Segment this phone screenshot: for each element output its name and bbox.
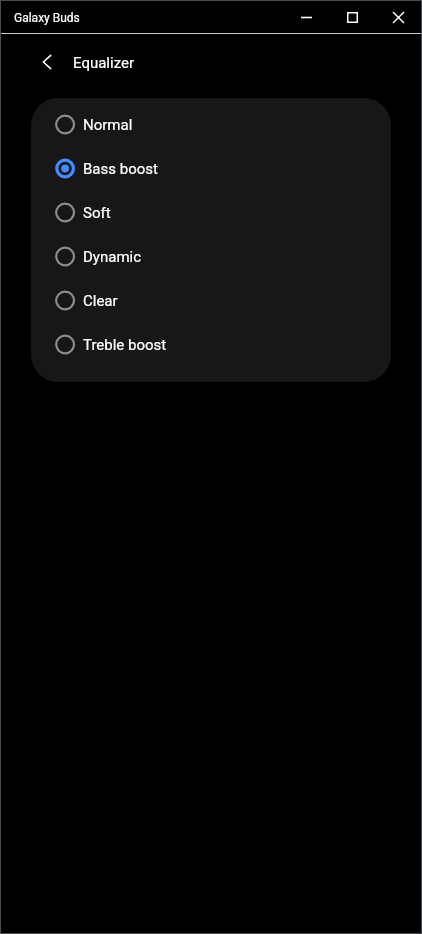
staticText: Dynamic bbox=[83, 248, 142, 266]
button[interactable]: Close bbox=[375, 2, 421, 33]
button[interactable]: Minimize bbox=[283, 2, 329, 33]
staticText: Normal bbox=[83, 116, 133, 134]
button[interactable]: Normal bbox=[31, 102, 391, 146]
staticText: Soft bbox=[83, 204, 111, 222]
button[interactable]: Dynamic bbox=[31, 234, 391, 278]
button[interactable]: Treble boost bbox=[31, 322, 391, 366]
button[interactable]: Soft bbox=[31, 190, 391, 234]
staticText: Bass boost bbox=[83, 160, 158, 178]
button[interactable]: Bass boost bbox=[31, 146, 391, 190]
staticText: Treble boost bbox=[83, 336, 167, 354]
staticText: Clear bbox=[83, 292, 118, 310]
staticText: Equalizer bbox=[73, 54, 134, 72]
button[interactable]: Clear bbox=[31, 278, 391, 322]
button[interactable]: Maximize bbox=[329, 2, 375, 33]
button[interactable]: Back bbox=[33, 48, 61, 76]
staticText: Galaxy Buds bbox=[14, 11, 80, 25]
